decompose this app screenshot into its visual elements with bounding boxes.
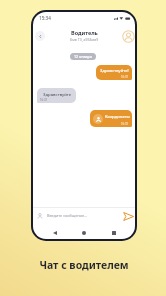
staticText: Координаты <box>105 114 130 120</box>
button[interactable]: Back <box>50 228 59 237</box>
staticText: 12 января <box>74 54 92 59</box>
button[interactable]: Координаты <box>90 110 132 127</box>
staticText: 16:31 <box>121 75 129 79</box>
button[interactable]: Здравствуйте <box>37 88 76 103</box>
staticText: Водитель <box>71 29 98 36</box>
staticText: 15:34 <box>39 15 51 21</box>
button[interactable]: Home <box>79 228 88 237</box>
button[interactable]: Back <box>35 31 45 41</box>
staticText: Здравствуйте! <box>100 68 129 74</box>
staticText: Чат с водителем <box>1 258 166 272</box>
button[interactable]: Recents <box>109 228 118 237</box>
button[interactable]: Send <box>122 210 134 222</box>
button[interactable]: Profile <box>122 30 135 43</box>
button[interactable]: Здравствуйте! <box>96 65 132 80</box>
staticText: 16:31 <box>121 122 129 126</box>
staticText: Здравствуйте <box>43 91 72 97</box>
staticText: Бмв Т3, а934мв9 <box>70 37 99 42</box>
staticText: Введите сообщение... <box>47 213 88 218</box>
button[interactable]: Attach <box>36 212 44 220</box>
staticText: 16:31 <box>40 98 48 102</box>
